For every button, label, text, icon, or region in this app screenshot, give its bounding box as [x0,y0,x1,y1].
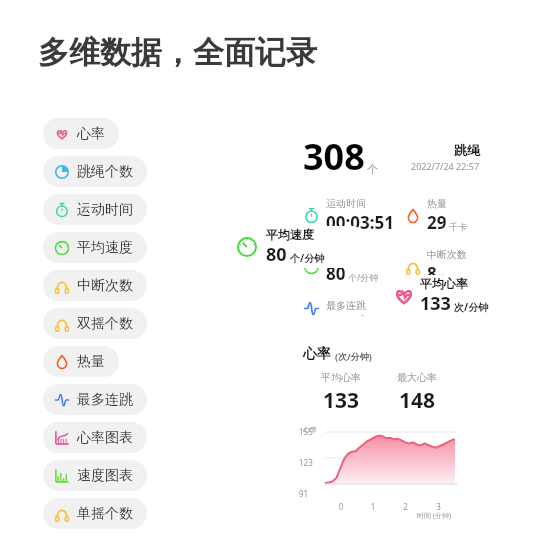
button[interactable]: 跳绳个数 [43,156,147,187]
staticText: 速度图表 [77,467,133,485]
staticText: 单摇个数 [77,505,133,523]
staticText: 133 [420,291,451,316]
staticText: 运动时间 [77,201,133,219]
staticText: 2022/7/24 22:57 [411,160,480,172]
button[interactable]: 最多连跳 [43,384,147,415]
staticText: 平均速度 [77,239,133,257]
staticText: 平均心率 [420,276,468,291]
staticText: 中断次数 [77,277,133,295]
button[interactable]: 心率 [287,333,473,527]
staticText: 0 [325,501,357,512]
staticText: 133 [323,386,360,415]
staticText: 心率 [303,425,317,434]
staticText: 热量 [77,353,105,371]
button[interactable]: 热量 [43,346,119,377]
button[interactable]: 双摇个数 [43,308,147,339]
button[interactable]: 心率 [43,118,119,149]
staticText: 308 [303,132,365,181]
staticText: 最多连跳 [326,299,366,312]
staticText: 平均心率 [321,371,361,384]
staticText: 跳绳个数 [77,163,133,181]
staticText: 155 [299,426,313,437]
staticText: 3 [422,501,455,512]
staticText: 个 [367,162,378,176]
staticText: 00:03:51 [326,211,394,234]
staticText: 148 [399,386,436,415]
button[interactable]: 单摇个数 [43,498,147,529]
staticText: 80 [266,242,287,267]
staticText: 80 [326,262,346,285]
staticText: 1 [357,501,389,512]
staticText: 热量 [427,197,447,210]
button[interactable]: 平均速度 [43,232,147,263]
staticText: 多维数据，全面记录 [38,33,317,72]
staticText: 次/分钟 [454,300,489,314]
staticText: 千卡 [449,221,467,232]
staticText: 个/分钟 [290,251,325,265]
staticText: 29 [427,211,447,234]
button[interactable]: 中断次数 [43,270,147,301]
staticText: 中断次数 [427,248,467,261]
button[interactable]: 平均心率 [382,275,505,317]
button[interactable]: 运动时间 [43,194,147,225]
staticText: 个 [358,313,367,316]
staticText: 心率 [77,125,105,143]
button[interactable]: 心率图表 [43,422,147,453]
staticText: 心率 [303,345,331,363]
staticText: 双摇个数 [77,315,133,333]
staticText: 最多连跳 [77,391,133,409]
staticText: 次 [439,272,448,283]
staticText: 个/分钟 [348,271,379,283]
staticText: 123 [299,457,313,468]
staticText: 时间 (分钟) [417,511,452,521]
staticText: 最大心率 [397,371,437,384]
button[interactable]: 平均速度 [222,226,365,268]
staticText: 平均心率 [427,299,467,312]
staticText: 8 [427,262,437,285]
staticText: 91 [299,488,309,499]
staticText: 心率图表 [77,429,133,447]
staticText: 平均速度 [266,227,314,242]
staticText: 2 [389,501,422,512]
staticText: 跳绳 [454,142,480,158]
button[interactable]: 速度图表 [43,460,147,491]
staticText: 运动时间 [326,197,366,210]
staticText: (次/分钟) [335,350,372,362]
button[interactable]: 308 [287,118,492,318]
